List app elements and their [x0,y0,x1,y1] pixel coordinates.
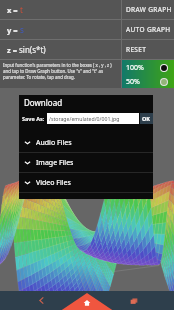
button[interactable]: Image Files [19,153,153,172]
button[interactable]: RESET [122,40,174,59]
staticText: OK [142,115,151,122]
staticText: s [20,24,24,35]
button[interactable]: OK [140,113,153,124]
button[interactable]: y = [0,20,121,39]
staticText: RESET [126,45,147,54]
staticText: 100% [126,63,144,73]
staticText: AUTO GRAPH [126,25,171,34]
staticText: Image Files [36,158,74,168]
staticText: t [20,4,23,15]
staticText: sin(s*t) [19,44,46,55]
button[interactable]: 50% [122,75,174,88]
staticText: /storage/emulated/0/001.jpg [49,115,120,122]
button[interactable]: Video Files [19,173,153,192]
button[interactable]: DRAW GRAPH [122,0,174,19]
staticText: x = [7,5,20,15]
staticText: Video Files [36,178,71,188]
staticText: 50% [126,77,140,87]
button[interactable]: Recent apps [120,291,147,310]
staticText: Input function's parameters in to the bo… [3,62,119,80]
button[interactable]: z = [0,40,121,59]
staticText: Audio Files [36,138,72,148]
staticText: z = [7,45,19,55]
button[interactable]: Back [28,291,55,310]
staticText: DRAW GRAPH [126,5,172,14]
button[interactable]: AUTO GRAPH [122,20,174,39]
staticText: Download [24,97,63,108]
button[interactable]: Audio Files [19,133,153,152]
button[interactable]: Home [0,291,174,310]
staticText: Save As: [22,115,45,122]
button[interactable]: 100% [122,60,174,75]
staticText: y = [7,25,20,35]
button[interactable]: x = [0,0,121,19]
